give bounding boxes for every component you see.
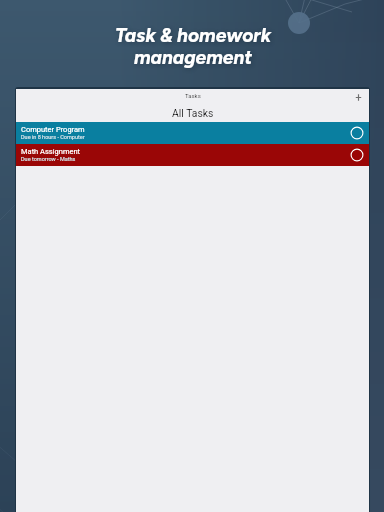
staticText: Due in 8 hours - Computer [21,134,85,140]
button[interactable]: Math Assignment [16,144,369,166]
staticText: Tasks [185,92,201,99]
button[interactable]: Computer Program [16,122,369,144]
staticText: All Tasks [172,107,214,119]
button[interactable]: Add task [348,89,369,106]
staticText: Task & homework management [1,24,384,69]
staticText: Computer Program [21,125,85,134]
staticText: Due tomorrow - Maths [21,156,76,162]
staticText: Math Assignment [21,147,81,156]
